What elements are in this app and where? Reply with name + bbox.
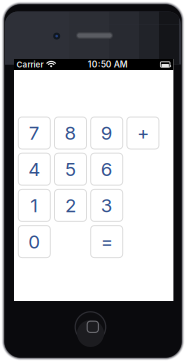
button[interactable]: 2 xyxy=(54,189,86,221)
staticText: + xyxy=(137,122,149,144)
button[interactable]: 1 xyxy=(18,189,50,221)
staticText: = xyxy=(101,230,113,253)
staticText: 1 xyxy=(30,194,38,217)
staticText: 3 xyxy=(101,194,113,217)
button[interactable]: 0 xyxy=(18,226,50,258)
button[interactable]: 3 xyxy=(91,189,123,221)
button[interactable]: + xyxy=(127,117,159,149)
staticText: 7 xyxy=(29,122,40,144)
staticText: 6 xyxy=(101,158,113,180)
staticText: Carrier xyxy=(16,60,43,69)
staticText: 8 xyxy=(64,122,76,144)
button[interactable]: 6 xyxy=(91,153,123,185)
button[interactable]: 8 xyxy=(54,117,86,149)
staticText: 5 xyxy=(65,158,76,180)
staticText: 9 xyxy=(101,122,113,144)
button[interactable]: 5 xyxy=(54,153,86,185)
button[interactable]: 7 xyxy=(18,117,50,149)
staticText: 4 xyxy=(28,158,40,180)
button[interactable]: 9 xyxy=(91,117,123,149)
staticText: 2 xyxy=(65,194,76,217)
button[interactable]: 4 xyxy=(18,153,50,185)
button[interactable]: = xyxy=(91,226,123,258)
staticText: 10:50 AM xyxy=(88,59,128,70)
staticText: 0 xyxy=(28,230,40,253)
